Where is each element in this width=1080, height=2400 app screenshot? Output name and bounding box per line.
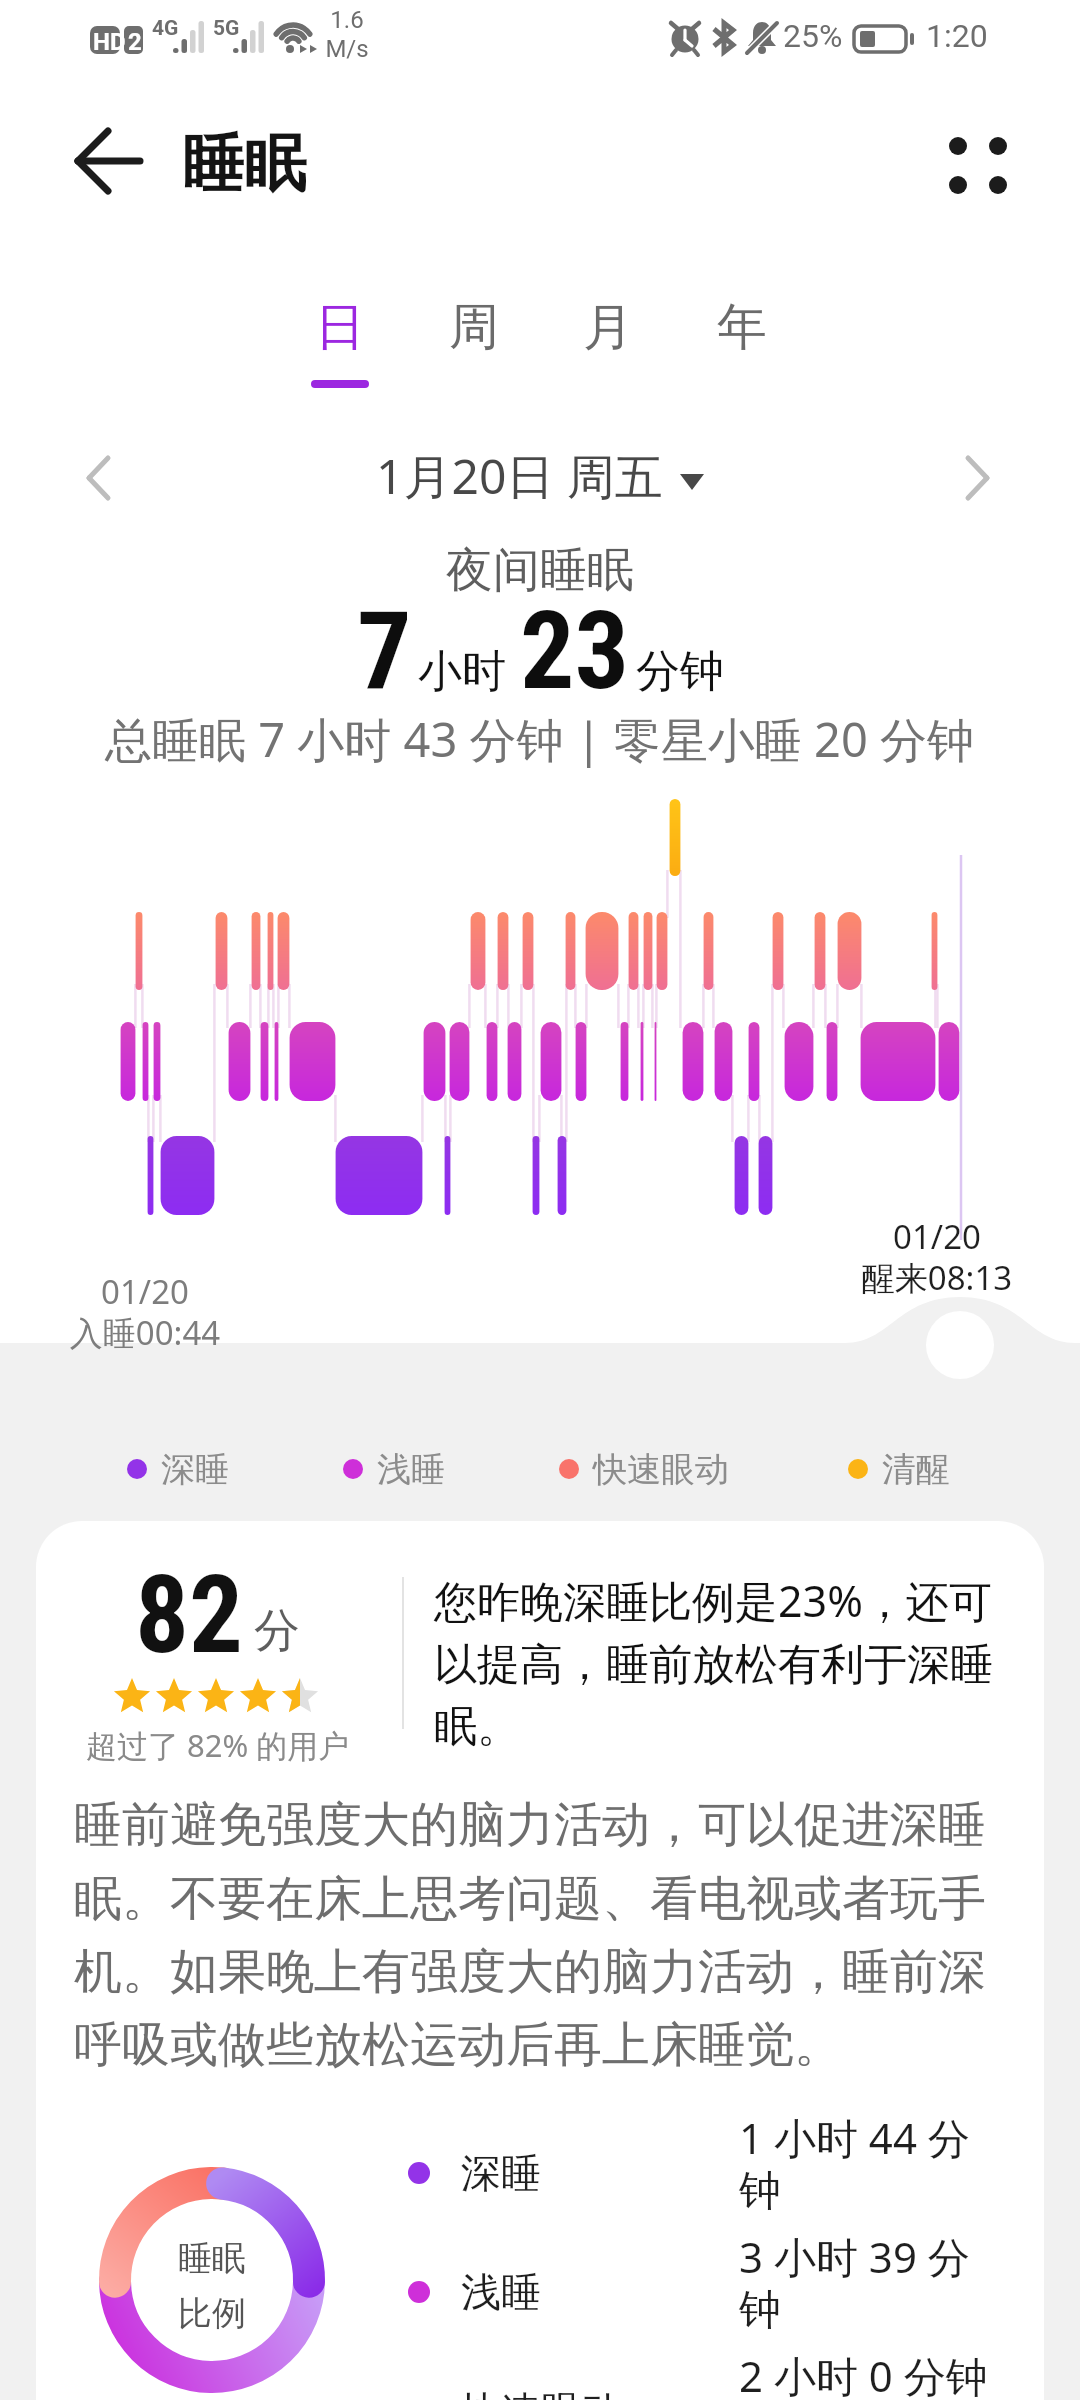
- button[interactable]: 快速眼动: [408, 2370, 1028, 2400]
- staticText: 1:20: [926, 17, 988, 55]
- staticText: 超过了 82% 的用户: [86, 1724, 350, 1766]
- staticText: 快速眼动: [461, 2386, 739, 2400]
- button[interactable]: 1月20日 周五: [0, 443, 1080, 509]
- button[interactable]: 浅睡: [343, 1444, 445, 1494]
- button[interactable]: 年: [687, 296, 797, 396]
- staticText: 01/20 入睡00:44: [45, 1269, 245, 1355]
- staticText: 清醒: [882, 1448, 950, 1491]
- staticText: 年: [717, 296, 767, 359]
- staticText: 1.6 M/s: [322, 6, 372, 63]
- staticText: 深睡: [161, 1448, 229, 1491]
- button[interactable]: Back: [58, 113, 158, 213]
- staticText: 浅睡: [461, 2267, 739, 2317]
- staticText: 夜间睡眠: [446, 541, 634, 600]
- staticText: HD: [93, 28, 126, 56]
- staticText: 比例: [178, 2292, 246, 2335]
- staticText: 1月20日 周五: [376, 443, 663, 509]
- staticText: 5G: [213, 16, 240, 41]
- staticText: 周: [449, 296, 499, 359]
- staticText: 1 小时 44 分 钟: [739, 2109, 970, 2218]
- staticText: 7: [357, 588, 412, 715]
- staticText: 2: [128, 28, 142, 56]
- staticText: 总睡眠 7 小时 43 分钟 | 零星小睡 20 分钟: [105, 707, 975, 771]
- staticText: 3 小时 39 分 钟: [739, 2228, 970, 2337]
- button[interactable]: 深睡: [127, 1444, 229, 1494]
- button[interactable]: 浅睡: [408, 2251, 1028, 2370]
- button[interactable]: Previous day: [76, 452, 128, 504]
- staticText: 月: [583, 296, 633, 359]
- staticText: 睡前避免强度大的脑力活动，可以促进深睡眠。不要在床上思考问题、看电视或者玩手机。…: [74, 1795, 1009, 2075]
- staticText: 浅睡: [377, 1448, 445, 1491]
- staticText: 25%: [783, 17, 843, 55]
- staticText: 您昨晚深睡比例是23%，还可以提高，睡前放松有利于深睡眠。: [434, 1571, 1034, 1754]
- button[interactable]: 深睡: [408, 2132, 1028, 2251]
- staticText: 分钟: [636, 644, 724, 699]
- button[interactable]: More options: [925, 115, 1025, 215]
- button[interactable]: 月: [553, 296, 663, 396]
- staticText: 82: [135, 1553, 244, 1678]
- button[interactable]: Next day: [952, 452, 1004, 504]
- staticText: 2 小时 0 分钟: [739, 2347, 988, 2400]
- staticText: 深睡: [461, 2148, 739, 2198]
- button[interactable]: 清醒: [848, 1444, 950, 1494]
- button[interactable]: 周: [419, 296, 529, 396]
- staticText: 睡眠: [182, 125, 306, 203]
- staticText: 睡眠: [178, 2237, 246, 2280]
- staticText: 23: [520, 588, 630, 715]
- staticText: 小时: [418, 644, 506, 699]
- staticText: 日: [315, 296, 365, 359]
- button[interactable]: 快速眼动: [559, 1444, 729, 1494]
- staticText: 分: [254, 1602, 300, 1660]
- button[interactable]: 日: [285, 296, 395, 396]
- staticText: 快速眼动: [593, 1448, 729, 1491]
- staticText: 4G: [152, 16, 179, 41]
- staticText: 01/20 醒来08:13: [837, 1214, 1037, 1300]
